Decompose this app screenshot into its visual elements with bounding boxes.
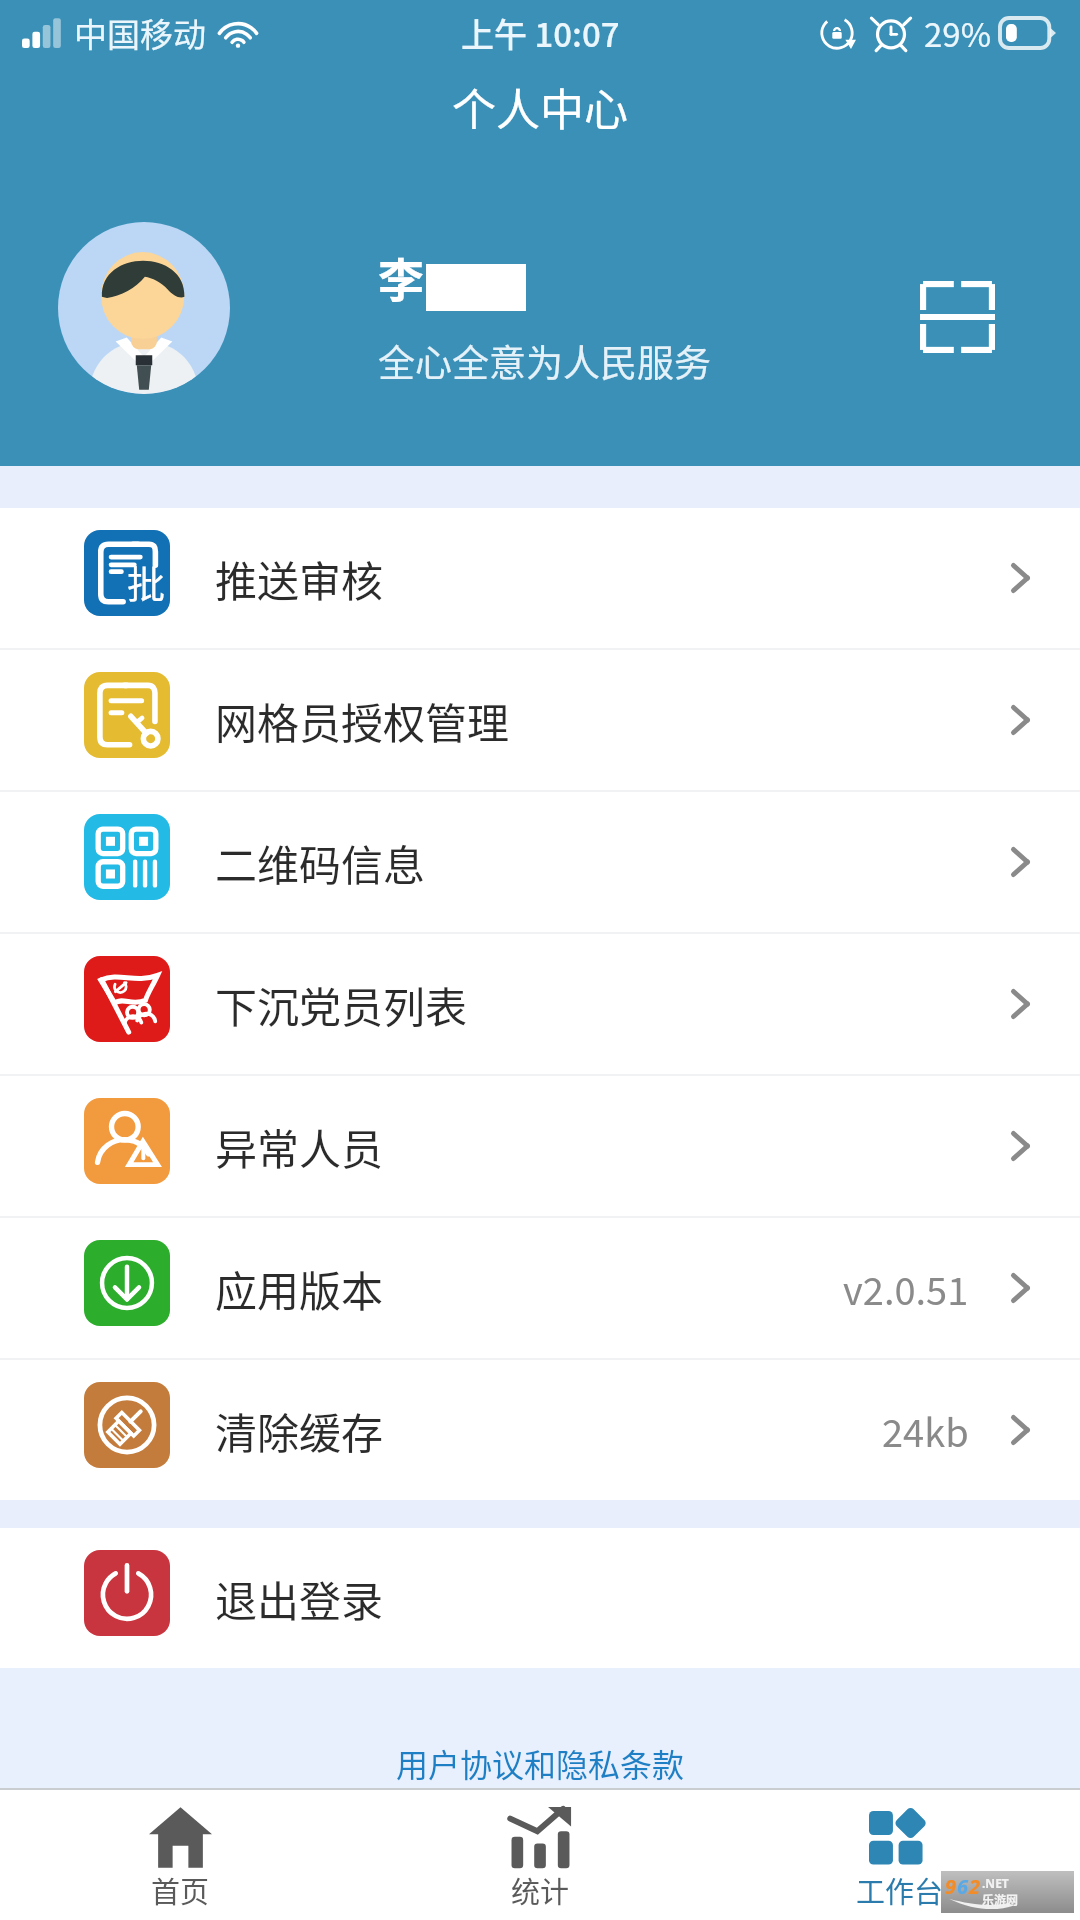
- staticText: 上午 10:07: [461, 9, 620, 57]
- staticText: 9: [945, 1873, 957, 1900]
- staticText: 乐游网: [982, 1891, 1019, 1908]
- button[interactable]: 批: [0, 508, 1080, 648]
- staticText: 退出登录: [215, 1568, 384, 1629]
- staticText: 统计: [511, 1869, 570, 1911]
- staticText: 下沉党员列表: [215, 974, 468, 1035]
- button[interactable]: 应用版本: [0, 1218, 1080, 1358]
- button[interactable]: 统计: [360, 1790, 720, 1920]
- button[interactable]: 清除缓存: [0, 1360, 1080, 1500]
- staticText: 批: [127, 554, 166, 609]
- staticText: 2: [969, 1873, 981, 1900]
- button[interactable]: 用户协议和隐私条款: [396, 1740, 685, 1786]
- button[interactable]: 首页: [0, 1790, 360, 1920]
- button[interactable]: 异常人员: [0, 1076, 1080, 1216]
- staticText: 李: [378, 244, 424, 311]
- button[interactable]: 下沉党员列表: [0, 934, 1080, 1074]
- staticText: 工作台: [856, 1869, 944, 1911]
- staticText: .NET: [982, 1875, 1009, 1891]
- staticText: 6: [957, 1873, 969, 1900]
- staticText: 二维码信息: [215, 832, 426, 893]
- staticText: 首页: [151, 1869, 210, 1911]
- staticText: 应用版本: [215, 1258, 384, 1319]
- button[interactable]: 退出登录: [0, 1528, 1080, 1668]
- staticText: 29%: [924, 9, 992, 57]
- button[interactable]: 工作台: [720, 1790, 1080, 1920]
- staticText: 异常人员: [215, 1116, 384, 1177]
- staticText: 中国移动: [74, 9, 206, 57]
- staticText: 全心全意为人民服务: [378, 334, 711, 388]
- button[interactable]: 二维码信息: [0, 792, 1080, 932]
- staticText: 个人中心: [452, 75, 628, 139]
- staticText: v2.0.51: [843, 1261, 969, 1316]
- staticText: 推送审核: [215, 548, 384, 609]
- button[interactable]: Scan QR code: [920, 281, 995, 353]
- staticText: 24kb: [882, 1403, 969, 1458]
- staticText: 用户协议和隐私条款: [396, 1740, 685, 1786]
- staticText: 网格员授权管理: [215, 690, 510, 751]
- staticText: 清除缓存: [215, 1400, 384, 1461]
- button[interactable]: 网格员授权管理: [0, 650, 1080, 790]
